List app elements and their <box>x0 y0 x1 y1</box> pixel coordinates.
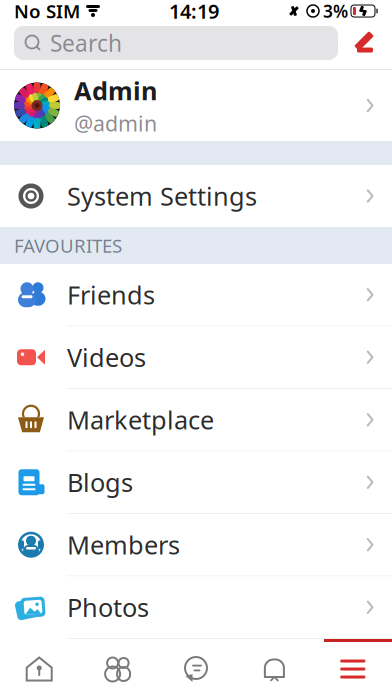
button[interactable]: System Settings <box>0 165 392 227</box>
button[interactable]: Members <box>0 514 392 576</box>
staticText: Marketplace <box>67 403 214 436</box>
button[interactable]: Menu <box>314 642 392 696</box>
button[interactable]: Friends <box>0 264 392 326</box>
staticText: Search <box>50 28 122 58</box>
button[interactable]: Search <box>14 26 338 60</box>
button[interactable]: Home <box>0 642 78 696</box>
button[interactable]: Notifications <box>235 642 314 696</box>
staticText: 3% <box>323 0 348 22</box>
staticText: Blogs <box>67 465 133 499</box>
staticText: 14:19 <box>169 0 219 24</box>
staticText: FAVOURITES <box>14 233 122 258</box>
staticText: Members <box>67 528 180 561</box>
staticText: Admin <box>74 73 157 107</box>
button[interactable]: Photos <box>0 576 392 639</box>
staticText: @admin <box>74 109 157 137</box>
staticText: System Settings <box>67 179 257 213</box>
staticText: Friends <box>67 278 155 311</box>
staticText: No SIM <box>14 0 80 23</box>
button[interactable]: Blogs <box>0 451 392 514</box>
button[interactable]: Marketplace <box>0 389 392 451</box>
button[interactable]: Compose <box>348 26 378 60</box>
staticText: Videos <box>67 340 146 374</box>
button[interactable]: Messages <box>157 642 235 696</box>
staticText: Photos <box>67 590 149 624</box>
button[interactable]: Videos <box>0 326 392 389</box>
button[interactable]: Admin <box>0 70 392 141</box>
button[interactable]: Friends <box>78 642 157 696</box>
